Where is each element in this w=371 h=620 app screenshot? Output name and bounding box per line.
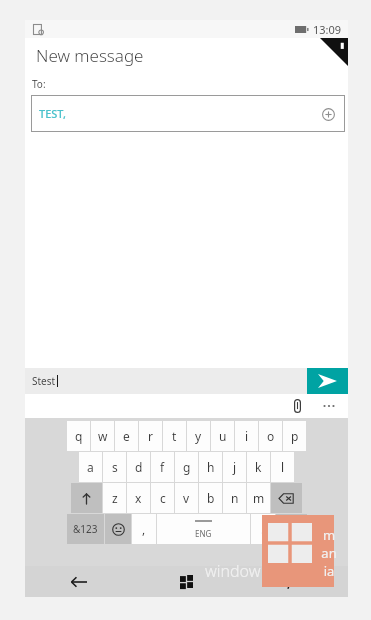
staticText: r — [148, 428, 153, 444]
staticText: j — [233, 459, 237, 475]
button[interactable]: a — [79, 452, 102, 482]
staticText: s — [112, 459, 118, 475]
button[interactable]: Send — [307, 368, 348, 394]
button[interactable]: c — [151, 483, 174, 513]
staticText: e — [123, 428, 130, 444]
staticText: c — [160, 490, 166, 506]
staticText: New message — [36, 44, 144, 67]
button[interactable]: b — [199, 483, 222, 513]
staticText: b — [207, 490, 215, 506]
button[interactable]: Enter — [276, 514, 307, 544]
staticText: , — [142, 521, 146, 537]
staticText: x — [135, 490, 142, 506]
button[interactable]: z — [103, 483, 126, 513]
button[interactable]: Stest — [25, 368, 307, 394]
button[interactable]: Add contact — [319, 105, 337, 123]
staticText: m — [253, 490, 265, 506]
button[interactable]: o — [259, 421, 282, 451]
staticText: g — [183, 459, 191, 475]
staticText: To: — [32, 77, 46, 91]
button[interactable]: s — [103, 452, 126, 482]
button[interactable]: f — [151, 452, 174, 482]
button[interactable]: Back — [25, 566, 132, 597]
button[interactable]: r — [139, 421, 162, 451]
staticText: l — [281, 459, 285, 475]
button[interactable]: Emoji — [105, 514, 131, 544]
button[interactable]: Backspace — [271, 483, 302, 513]
button[interactable]: k — [247, 452, 270, 482]
button[interactable]: l — [271, 452, 294, 482]
staticText: a — [87, 459, 94, 475]
button[interactable]: i — [235, 421, 258, 451]
button[interactable]: Shift — [71, 483, 102, 513]
staticText: 13:09 — [313, 22, 342, 37]
staticText: u — [219, 428, 227, 444]
button[interactable]: n — [223, 483, 246, 513]
button[interactable]: p — [283, 421, 306, 451]
staticText: v — [183, 490, 190, 506]
staticText: h — [207, 459, 215, 475]
staticText: n — [231, 490, 239, 506]
button[interactable]: e — [115, 421, 138, 451]
button[interactable]: More options — [316, 394, 342, 418]
button[interactable]: m — [247, 483, 270, 513]
button[interactable]: u — [211, 421, 234, 451]
button[interactable]: y — [187, 421, 210, 451]
button[interactable]: Space — [157, 514, 250, 544]
staticText: i — [245, 428, 249, 444]
staticText: y — [195, 428, 202, 444]
button[interactable]: Search — [240, 566, 348, 597]
staticText: o — [267, 428, 275, 444]
staticText: windows — [205, 560, 265, 582]
staticText: . — [261, 521, 265, 537]
button[interactable]: . — [251, 514, 275, 544]
staticText: z — [112, 490, 118, 506]
staticText: d — [135, 459, 143, 475]
button[interactable]: t — [163, 421, 186, 451]
button[interactable]: , — [132, 514, 156, 544]
staticText: f — [160, 459, 165, 475]
staticText: w — [98, 428, 108, 444]
staticText: k — [255, 459, 262, 475]
button[interactable]: d — [127, 452, 150, 482]
button[interactable]: w — [91, 421, 114, 451]
button[interactable]: Start — [132, 566, 240, 597]
staticText: t — [172, 428, 177, 444]
staticText: p — [291, 428, 299, 444]
button[interactable]: h — [199, 452, 222, 482]
staticText: q — [75, 428, 83, 444]
button[interactable]: g — [175, 452, 198, 482]
button[interactable]: TEST, — [31, 95, 345, 132]
button[interactable]: x — [127, 483, 150, 513]
staticText: mania — [320, 526, 338, 580]
button[interactable]: Attach — [284, 394, 310, 418]
staticText: ENG — [195, 528, 212, 539]
button[interactable]: v — [175, 483, 198, 513]
staticText: &123 — [73, 522, 98, 536]
button[interactable]: j — [223, 452, 246, 482]
button[interactable]: &123 — [67, 514, 104, 544]
staticText: Stest — [32, 374, 56, 388]
staticText: TEST, — [39, 106, 66, 121]
button[interactable]: q — [67, 421, 90, 451]
